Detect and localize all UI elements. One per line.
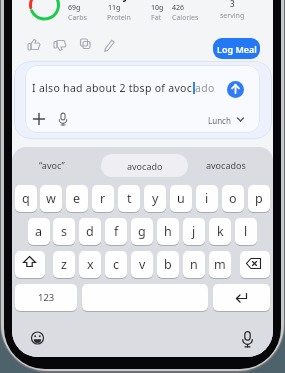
staticText: v <box>139 256 146 273</box>
staticText: n <box>190 256 198 273</box>
button[interactable]: g <box>131 218 153 245</box>
staticText: 10g <box>151 3 164 13</box>
button[interactable]: r <box>92 185 114 212</box>
button[interactable] <box>240 251 270 278</box>
button[interactable]: n <box>183 251 205 278</box>
staticText: d <box>86 223 94 240</box>
button[interactable]: z <box>53 251 75 278</box>
staticText: Log Meal <box>217 43 257 55</box>
button[interactable]: Log Meal <box>213 38 260 59</box>
button[interactable]: p <box>248 185 270 212</box>
button[interactable]: l <box>235 218 257 245</box>
button[interactable]: f <box>105 218 127 245</box>
staticText: o <box>229 190 237 207</box>
button[interactable] <box>82 284 208 311</box>
button[interactable]: t <box>118 185 140 212</box>
staticText: e <box>73 190 81 207</box>
button[interactable] <box>227 81 244 98</box>
staticText: b <box>164 256 172 273</box>
staticText: y <box>152 190 159 207</box>
button[interactable]: “avoc” <box>12 0 38 12</box>
button[interactable]: x <box>79 251 101 278</box>
button[interactable]: e <box>66 185 88 212</box>
staticText: p <box>255 190 263 207</box>
staticText: l <box>244 223 248 240</box>
button[interactable] <box>213 284 270 311</box>
button[interactable] <box>30 330 45 346</box>
button[interactable] <box>15 284 77 311</box>
staticText: h <box>164 223 172 240</box>
button[interactable]: c <box>105 251 127 278</box>
button[interactable]: avocado <box>101 154 188 177</box>
staticText: Fat <box>151 13 162 23</box>
staticText: 11g <box>108 3 121 13</box>
staticText: t <box>127 190 132 207</box>
button[interactable]: y <box>144 185 166 212</box>
staticText: 3 <box>230 0 235 9</box>
staticText: z <box>61 256 67 273</box>
button[interactable]: s <box>53 218 75 245</box>
staticText: x <box>87 256 94 273</box>
staticText: I also had about 2 tbsp of avoc <box>32 81 193 95</box>
button[interactable]: u <box>170 185 192 212</box>
button[interactable]: Lunch <box>12 0 35 11</box>
button[interactable]: w <box>40 185 62 212</box>
button[interactable]: j <box>183 218 205 245</box>
button[interactable] <box>54 38 67 52</box>
staticText: Meal Teriyaki <box>68 0 148 2</box>
staticText: m <box>214 256 226 273</box>
button[interactable]: k <box>209 218 231 245</box>
button[interactable] <box>32 112 46 126</box>
staticText: 69g <box>68 3 81 13</box>
button[interactable]: o <box>222 185 244 212</box>
staticText: a <box>35 223 43 240</box>
staticText: w <box>46 190 56 207</box>
staticText: j <box>192 223 196 240</box>
button[interactable]: m <box>209 251 231 278</box>
button[interactable]: a <box>28 218 50 245</box>
button[interactable] <box>56 110 70 127</box>
staticText: c <box>113 256 120 273</box>
button[interactable]: d <box>79 218 101 245</box>
staticText: s <box>61 223 67 240</box>
button[interactable]: b <box>157 251 179 278</box>
staticText: Protein <box>107 13 131 23</box>
button[interactable]: q <box>15 185 37 212</box>
staticText: Carbs <box>68 13 87 23</box>
button[interactable] <box>28 38 41 52</box>
staticText: q <box>22 190 30 207</box>
button[interactable] <box>25 65 260 133</box>
button[interactable] <box>15 251 45 278</box>
button[interactable] <box>79 38 92 52</box>
staticText: k <box>217 223 224 240</box>
staticText: serving <box>220 11 245 21</box>
staticText: Calories <box>172 13 199 23</box>
staticText: f <box>114 223 119 240</box>
button[interactable]: h <box>157 218 179 245</box>
button[interactable]: i <box>196 185 218 212</box>
staticText: i <box>205 190 209 207</box>
button[interactable]: avocados <box>12 0 52 12</box>
button[interactable] <box>103 38 116 52</box>
staticText: u <box>177 190 185 207</box>
button[interactable]: v <box>131 251 153 278</box>
staticText: 426 <box>172 3 185 13</box>
staticText: r <box>100 190 106 207</box>
staticText: avocado <box>127 160 163 172</box>
staticText: 123 <box>38 291 55 304</box>
staticText: ado <box>195 81 215 95</box>
staticText: g <box>138 223 146 240</box>
button[interactable] <box>240 329 255 348</box>
